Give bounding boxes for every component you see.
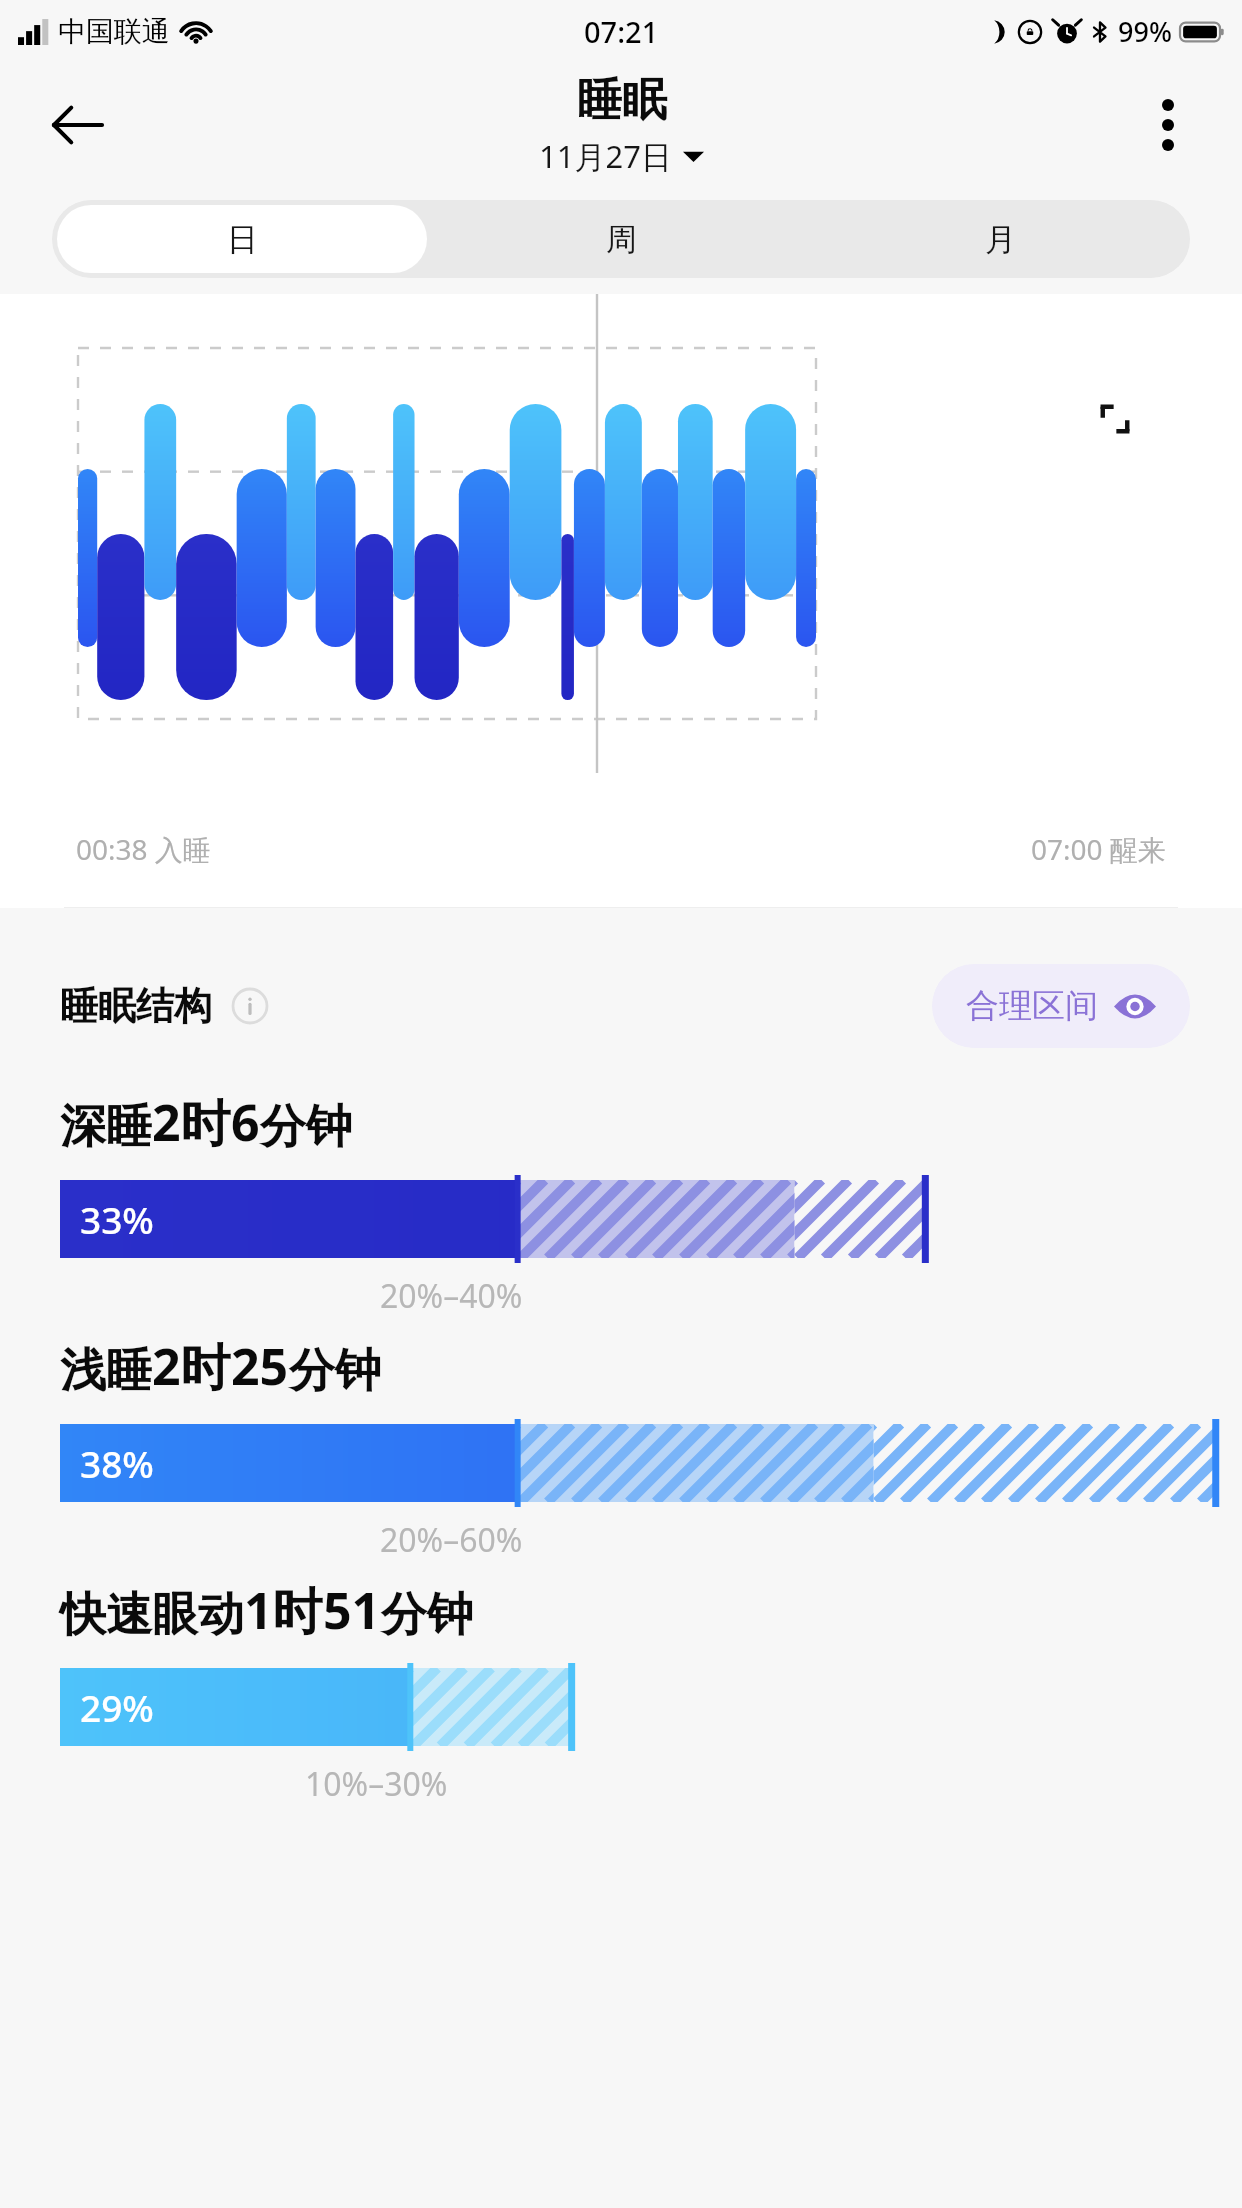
button[interactable]: 更多选项 [1130,87,1206,163]
staticText: 00:38 入睡 [76,830,211,868]
staticText: 51 [323,1576,381,1644]
staticText: 38% [80,1438,154,1488]
staticText: 月 [985,220,1016,259]
staticText: 日 [227,220,258,259]
staticText: 睡眠结构 [60,982,212,1030]
staticText: 浅睡 [60,1342,152,1400]
staticText: 33% [80,1194,154,1244]
button[interactable]: 合理区间 [932,964,1190,1048]
button[interactable]: 38% [60,1424,1190,1502]
button[interactable]: 29% [60,1668,1190,1746]
staticText: 20%–40% [380,1274,523,1318]
staticText: 合理区间 [966,985,1098,1027]
staticText: 深睡 [60,1098,152,1156]
staticText: 分钟 [260,1098,352,1156]
staticText: 25 [231,1332,289,1400]
staticText: 07:00 醒来 [1031,830,1166,868]
staticText: 10%–30% [305,1762,448,1806]
staticText: 分钟 [381,1586,473,1644]
staticText: 2时 [152,1332,231,1400]
staticText: 29% [80,1682,154,1732]
button[interactable]: 返回 [38,85,118,165]
button[interactable]: 睡眠结构说明 [228,984,272,1028]
button[interactable]: 全屏查看 [1078,382,1152,456]
staticText: 11月27日 [539,135,672,177]
button[interactable]: 月 [816,205,1185,273]
staticText: 睡眠 [577,72,667,129]
button[interactable]: 日 [57,205,427,273]
staticText: 99% [1118,13,1172,50]
staticText: 6 [231,1088,260,1156]
staticText: 20%–60% [380,1518,523,1562]
staticText: 快速眼动 [60,1586,244,1644]
staticText: 中国联通 [58,14,170,49]
button[interactable]: 周 [437,205,806,273]
staticText: 分钟 [289,1342,381,1400]
staticText: 07:21 [584,12,659,51]
button[interactable]: 33% [60,1180,1190,1258]
staticText: 周 [606,220,637,259]
staticText: 2时 [152,1088,231,1156]
button[interactable]: 11月27日 [535,133,708,179]
staticText: 1时 [244,1576,323,1644]
